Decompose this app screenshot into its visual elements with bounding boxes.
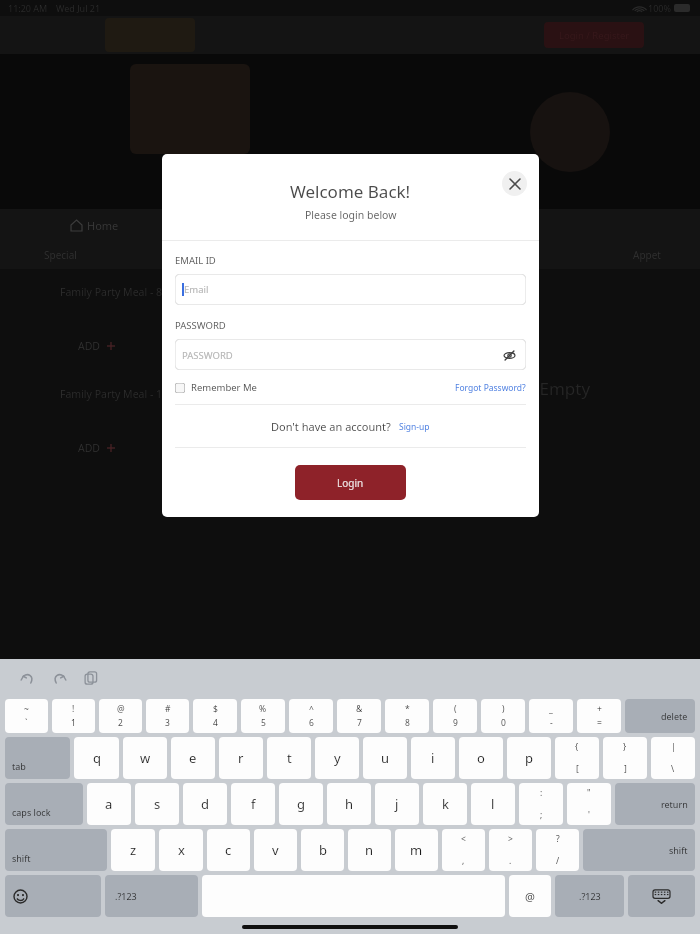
staticText: = <box>597 717 602 729</box>
staticText: y <box>334 749 341 767</box>
staticText: \ <box>671 763 675 775</box>
button[interactable]: Undo <box>14 665 40 691</box>
button[interactable]: y <box>315 737 359 779</box>
button[interactable]: c <box>207 829 250 871</box>
button[interactable]: ( <box>433 699 477 733</box>
button[interactable]: ) <box>481 699 525 733</box>
button[interactable]: b <box>301 829 344 871</box>
button[interactable]: g <box>279 783 323 825</box>
button[interactable]: # <box>146 699 189 733</box>
staticText: .?123 <box>115 890 137 902</box>
button[interactable]: @ <box>509 875 551 917</box>
button[interactable]: > <box>489 829 532 871</box>
button[interactable]: w <box>123 737 167 779</box>
button[interactable]: Show password <box>499 345 519 365</box>
button[interactable]: ! <box>52 699 95 733</box>
button[interactable]: n <box>348 829 391 871</box>
button[interactable]: + <box>577 699 621 733</box>
button[interactable]: d <box>183 783 227 825</box>
button[interactable]: } <box>603 737 647 779</box>
button[interactable]: h <box>327 783 371 825</box>
button[interactable]: Hide keyboard <box>628 875 695 917</box>
button[interactable]: Emoji <box>5 875 101 917</box>
staticText: 100% <box>648 2 671 14</box>
button[interactable]: < <box>442 829 485 871</box>
button[interactable]: t <box>267 737 311 779</box>
button[interactable]: _ <box>529 699 573 733</box>
button[interactable]: Home <box>71 218 119 233</box>
button[interactable]: x <box>159 829 203 871</box>
button[interactable]: Email <box>175 274 526 305</box>
button[interactable]: m <box>395 829 438 871</box>
button[interactable]: v <box>254 829 297 871</box>
button[interactable]: Close <box>502 171 527 196</box>
button[interactable]: Forgot Password? <box>455 382 526 394</box>
button[interactable]: Paste <box>78 665 104 691</box>
button[interactable]: k <box>423 783 467 825</box>
button[interactable]: return <box>615 783 695 825</box>
button[interactable]: @ <box>99 699 142 733</box>
staticText: 8 <box>405 717 410 729</box>
button[interactable]: shift <box>583 829 695 871</box>
button[interactable]: caps lock <box>5 783 83 825</box>
staticText: h <box>345 795 354 813</box>
button[interactable]: $ <box>193 699 237 733</box>
button[interactable]: ^ <box>289 699 333 733</box>
button[interactable]: q <box>74 737 119 779</box>
button[interactable]: p <box>507 737 551 779</box>
button[interactable]: Sign-up <box>399 421 430 433</box>
staticText: ' <box>588 809 590 821</box>
button[interactable]: ADD <box>78 441 115 455</box>
button[interactable]: Redo <box>46 665 72 691</box>
staticText: ( <box>454 703 457 715</box>
button[interactable]: u <box>363 737 407 779</box>
button[interactable]: { <box>555 737 599 779</box>
button[interactable]: ~ <box>5 699 48 733</box>
staticText: 0 <box>501 717 506 729</box>
button[interactable]: .?123 <box>105 875 198 917</box>
button[interactable]: i <box>411 737 455 779</box>
staticText: PASSWORD <box>175 319 226 332</box>
staticText: & <box>356 703 363 715</box>
button[interactable]: * <box>385 699 429 733</box>
button[interactable]: | <box>651 737 695 779</box>
staticText: @ <box>117 703 125 715</box>
button[interactable]: : <box>519 783 563 825</box>
button[interactable]: Remember Me <box>175 381 257 394</box>
staticText: EMAIL ID <box>175 254 216 267</box>
button[interactable]: s <box>135 783 179 825</box>
button[interactable]: .?123 <box>555 875 624 917</box>
staticText: .?123 <box>579 890 601 902</box>
button[interactable]: f <box>231 783 275 825</box>
staticText: x <box>178 841 185 859</box>
button[interactable]: Appet <box>633 248 661 262</box>
button[interactable]: l <box>471 783 515 825</box>
button[interactable]: & <box>337 699 381 733</box>
button[interactable]: Special <box>44 248 77 262</box>
button[interactable]: % <box>241 699 285 733</box>
button[interactable]: Chicken <box>195 248 233 262</box>
staticText: Appet <box>633 248 661 262</box>
button[interactable]: a <box>87 783 131 825</box>
button[interactable]: shift <box>5 829 107 871</box>
button[interactable]: z <box>111 829 155 871</box>
staticText: - <box>550 717 553 729</box>
button[interactable]: " <box>567 783 611 825</box>
button[interactable]: PASSWORD <box>175 339 526 370</box>
button[interactable]: Login <box>295 465 406 500</box>
staticText: [ <box>576 763 579 775</box>
staticText: n <box>365 841 374 859</box>
button[interactable]: ADD <box>78 339 115 353</box>
button[interactable]: tab <box>5 737 70 779</box>
button[interactable]: o <box>459 737 503 779</box>
button[interactable]: e <box>171 737 215 779</box>
staticText: ~ <box>24 703 29 715</box>
button[interactable]: j <box>375 783 419 825</box>
button[interactable]: ? <box>536 829 579 871</box>
button[interactable]: delete <box>625 699 695 733</box>
button[interactable]: r <box>219 737 263 779</box>
